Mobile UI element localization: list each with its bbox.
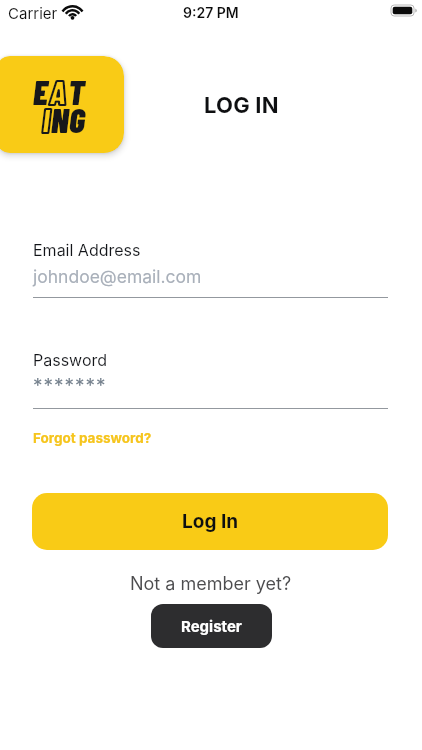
staticText: Register	[181, 617, 242, 635]
staticText: 9:27 PM	[183, 4, 239, 21]
button[interactable]: Log In	[32, 493, 388, 550]
staticText: E	[33, 71, 49, 112]
button[interactable]: *******	[33, 374, 389, 404]
button[interactable]: Forgot password?	[33, 430, 152, 446]
staticText: Not a member yet?	[130, 573, 292, 595]
staticText: A	[49, 71, 68, 112]
staticText: *******	[33, 374, 107, 397]
staticText: NG	[51, 99, 86, 140]
staticText: Carrier	[8, 4, 58, 22]
staticText: Log In	[182, 510, 239, 533]
button[interactable]: johndoe@email.com	[33, 266, 389, 298]
staticText: T	[68, 71, 85, 112]
staticText: johndoe@email.com	[33, 266, 202, 287]
button[interactable]: Register	[151, 604, 272, 648]
staticText: I	[42, 99, 51, 140]
staticText: LOG IN	[204, 92, 279, 119]
staticText: Password	[33, 350, 108, 369]
staticText: Email Address	[33, 240, 141, 259]
staticText: Forgot password?	[33, 430, 152, 446]
